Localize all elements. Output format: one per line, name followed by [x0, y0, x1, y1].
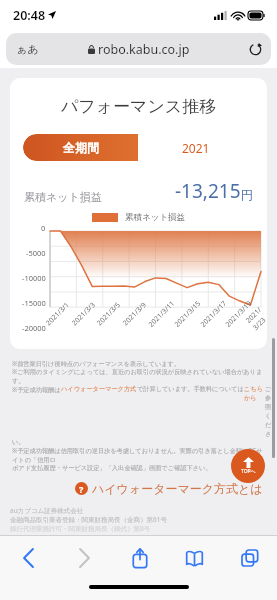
staticText: -10000 — [22, 273, 46, 283]
staticText: ※ご利用のタイミングによっては、直近のお取引の状況が反映されていない場合がありま… — [12, 367, 265, 385]
staticText: 2021/3/19 — [223, 298, 254, 329]
staticText: 累積ネット損益 — [24, 190, 102, 204]
staticText: robo.kabu.co.jp — [98, 41, 190, 58]
staticText: こちらから — [244, 385, 265, 402]
staticText: -5000 — [26, 248, 46, 258]
button[interactable]: Forward — [56, 536, 112, 580]
staticText: 全期間 — [63, 140, 99, 155]
staticText: ? — [79, 483, 84, 495]
staticText: 累積ネット損益 — [125, 212, 186, 223]
staticText: -13,215 — [175, 178, 241, 204]
staticText: auカブコム証券株式会社 — [10, 506, 84, 515]
staticText: ぁあ — [16, 42, 39, 56]
staticText: 2021/3/9 — [121, 300, 149, 328]
button[interactable]: ? — [0, 481, 263, 496]
staticText: パフォーマンス推移 — [10, 96, 267, 117]
staticText: 円 — [241, 187, 253, 202]
staticText: -20000 — [22, 323, 46, 333]
staticText: 銀行代理業務許可・関東財務局長（銀代）第8号 — [10, 524, 151, 533]
staticText: 2021/3/17 — [198, 298, 229, 329]
staticText: 2021/3/1 — [44, 300, 72, 328]
button[interactable]: Tabs — [222, 536, 277, 580]
staticText: で計算しています。手数料については — [137, 385, 244, 393]
staticText: 0 — [41, 223, 46, 233]
staticText: ※予定成功報酬は信用取引の逆日歩を考慮しておりません。実際の引き落とし金額はPC… — [12, 446, 265, 464]
button[interactable]: 全期間 — [23, 134, 138, 161]
button[interactable]: Bookmarks — [167, 536, 222, 580]
staticText: ※前営業日引け後時点のパフォーマンスを表示しています。 — [12, 359, 181, 367]
button[interactable]: 2021 — [138, 134, 254, 161]
staticText: 2021/3/15 — [172, 298, 203, 329]
staticText: ハイウォーターマーク方式 — [61, 385, 137, 393]
staticText: ハイウォーターマーク方式とは — [92, 481, 263, 496]
staticText: TOPへ — [241, 468, 256, 475]
staticText: 2021 — [182, 140, 210, 156]
staticText: 2021/3/11 — [146, 298, 177, 329]
staticText: 2021/3/3 — [70, 300, 98, 328]
button[interactable]: Back to top — [231, 449, 265, 483]
staticText: 2021/3/23 — [244, 305, 267, 333]
button[interactable]: Share — [112, 536, 167, 580]
button[interactable]: Reload — [247, 41, 263, 57]
staticText: い。 — [12, 438, 25, 446]
staticText: 20:48 — [13, 7, 46, 24]
staticText: -15000 — [22, 298, 46, 308]
button[interactable]: ぁあ — [6, 33, 271, 65]
staticText: ※予定成功報酬は — [12, 385, 61, 393]
staticText: 2021/3/5 — [95, 300, 123, 328]
staticText: 金融商品取引業者登録：関東財務局長（金商）第61号 — [10, 515, 167, 524]
button[interactable]: Back — [0, 536, 56, 580]
staticText: ボアド支払履歴・サービス設定」「入出金確認」画面でご確認下さい。 — [12, 464, 212, 472]
